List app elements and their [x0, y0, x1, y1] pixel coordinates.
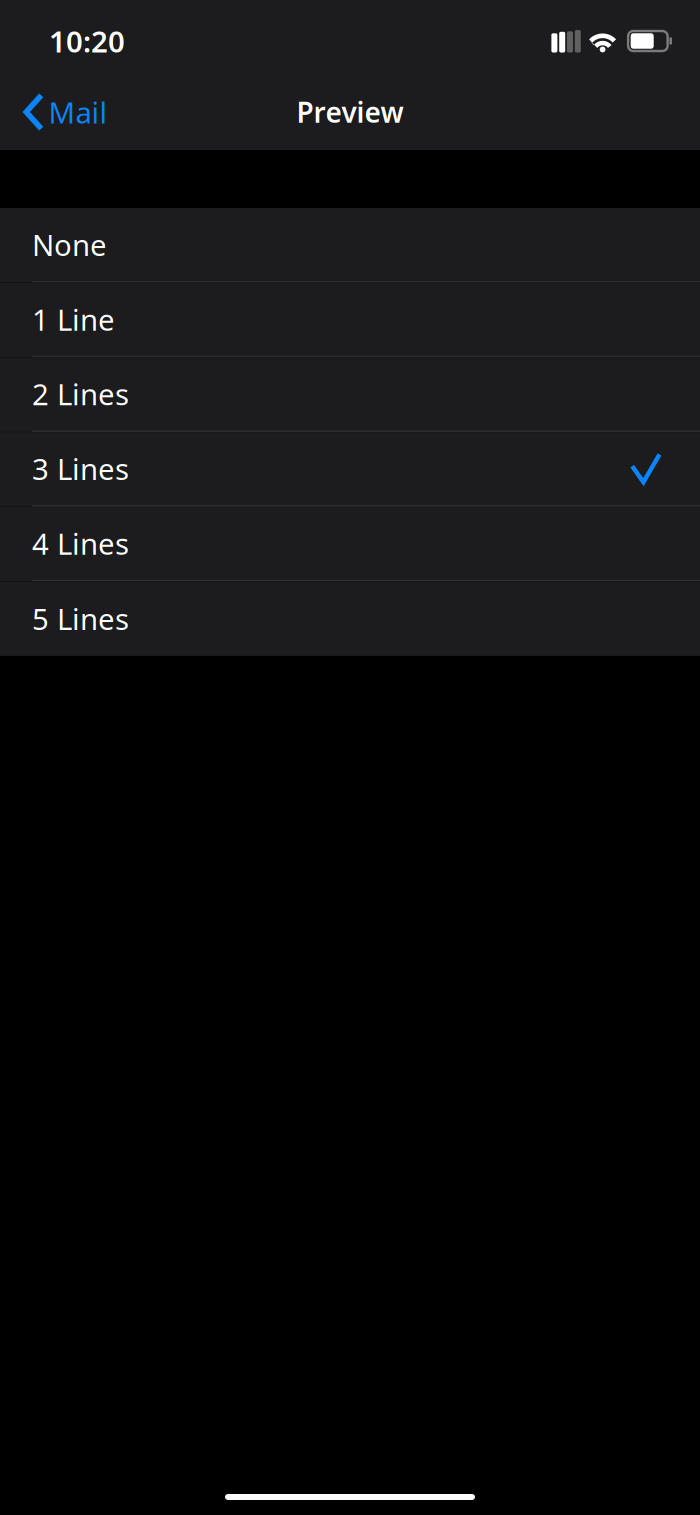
staticText: None	[32, 225, 107, 264]
staticText: 2 Lines	[32, 374, 129, 413]
staticText: 3 Lines	[32, 449, 129, 488]
staticText: Preview	[296, 93, 403, 131]
staticText: 4 Lines	[32, 524, 129, 563]
button[interactable]: 3 Lines	[0, 432, 700, 507]
staticText: Mail	[48, 92, 107, 131]
staticText: 10:20	[49, 21, 125, 60]
button[interactable]: None	[0, 208, 700, 282]
staticText: 1 Line	[32, 300, 115, 339]
button[interactable]: 2 Lines	[0, 357, 700, 432]
button[interactable]: Back to Mail	[0, 90, 121, 134]
staticText: 5 Lines	[32, 599, 129, 638]
button[interactable]: 5 Lines	[0, 581, 700, 656]
button[interactable]: 4 Lines	[0, 507, 700, 581]
button[interactable]: 1 Line	[0, 283, 700, 357]
